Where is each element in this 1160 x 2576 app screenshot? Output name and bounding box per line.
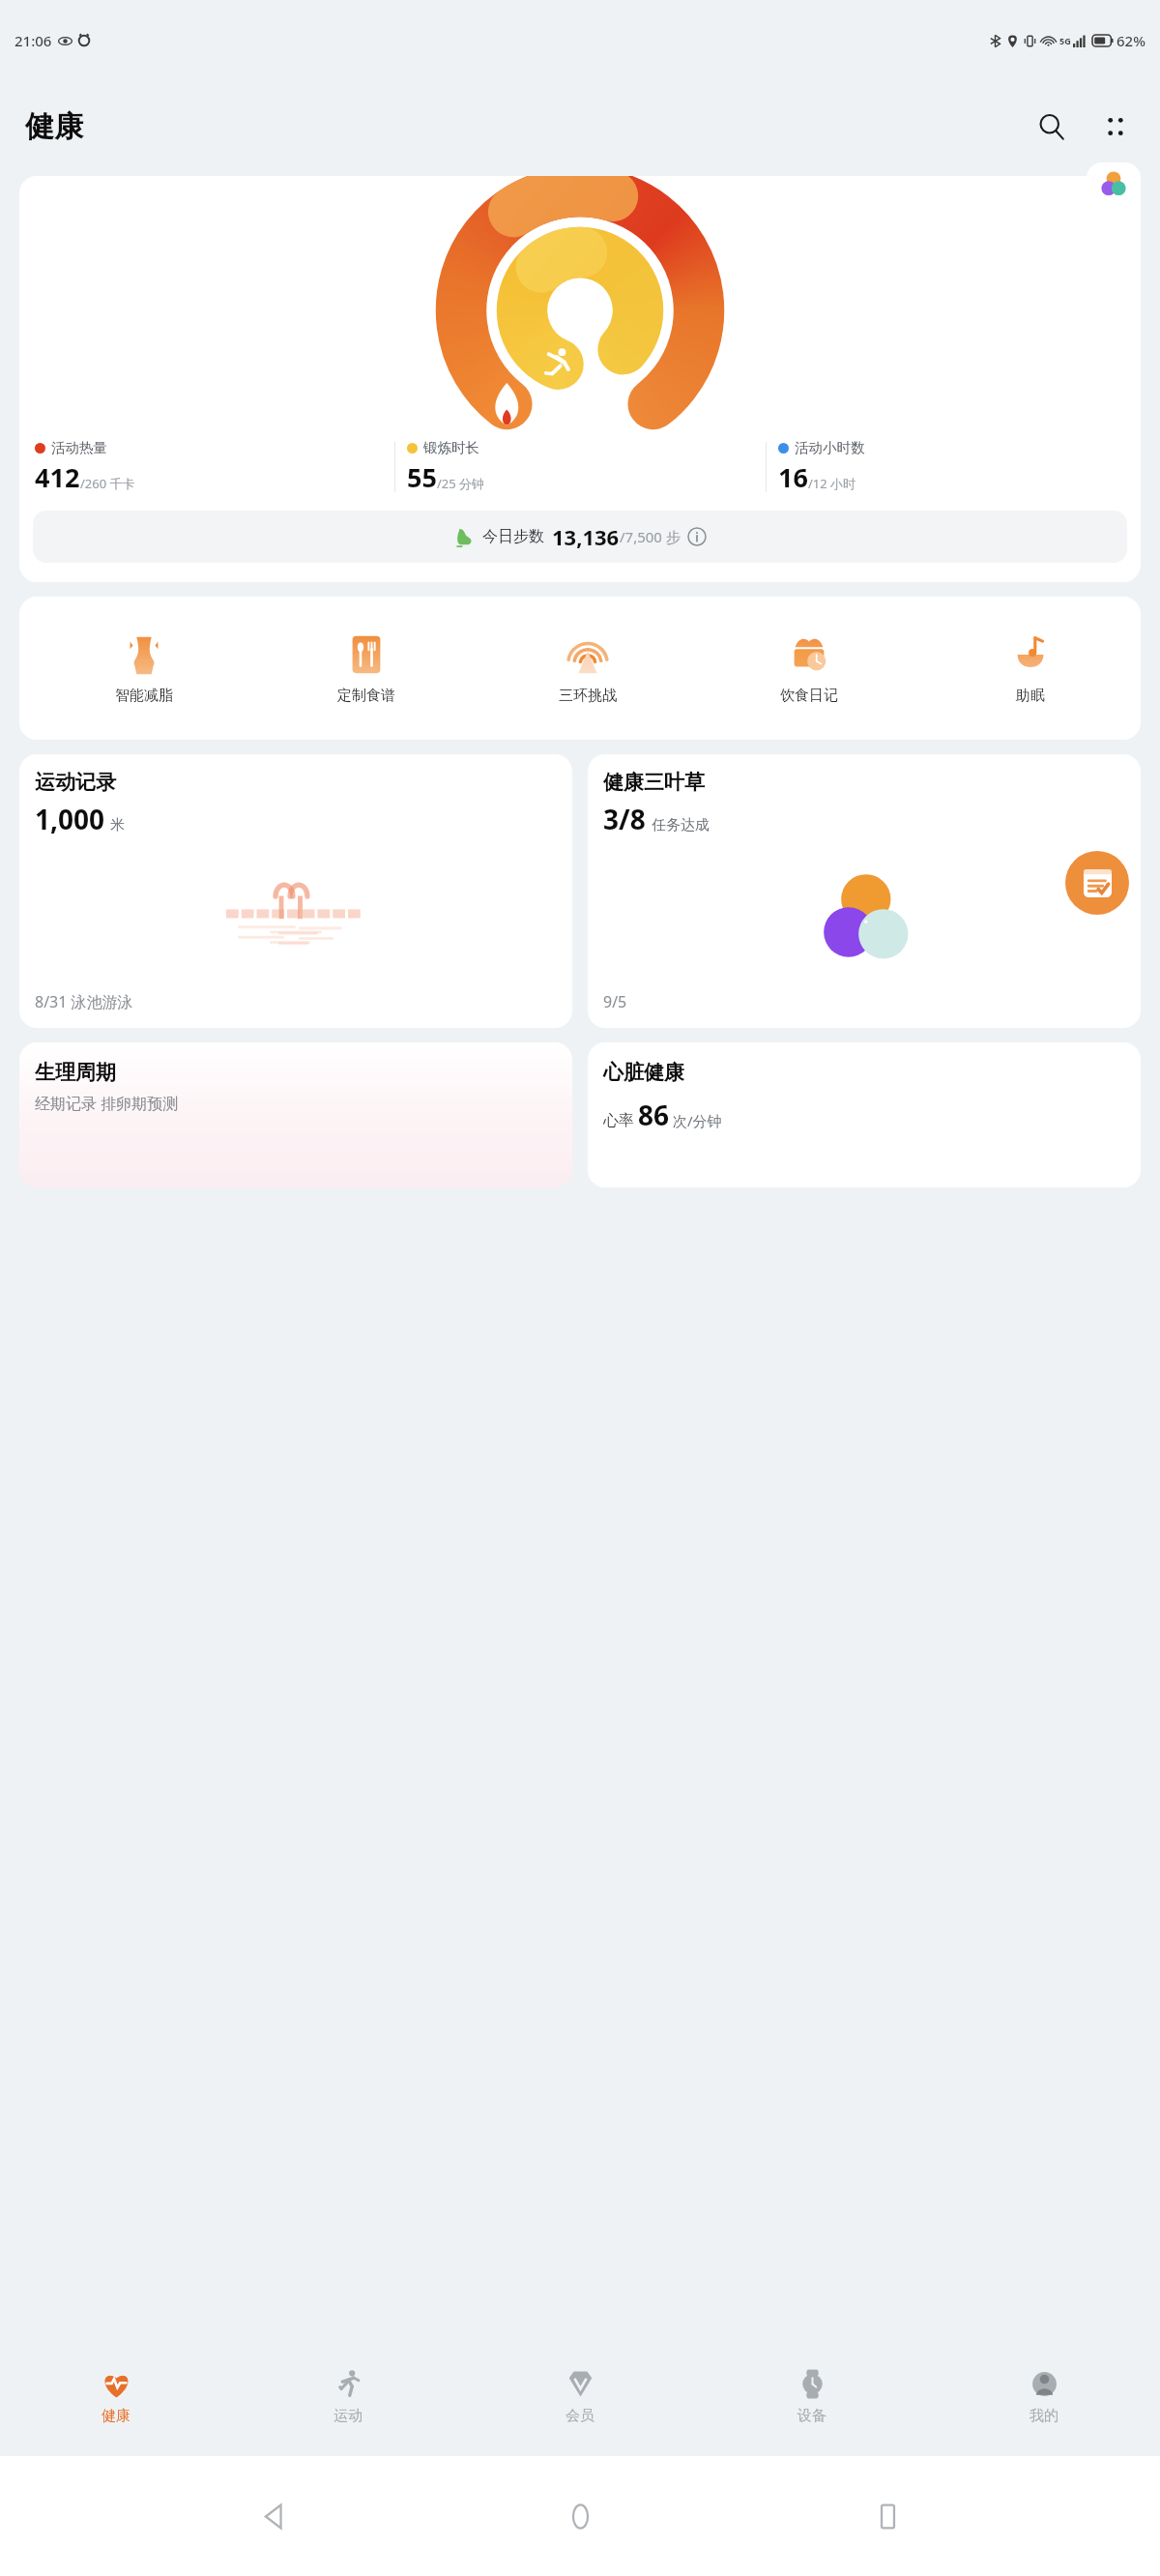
button[interactable]: 心脏健康 [588, 1042, 1141, 1187]
button[interactable]: 活动热量 [23, 439, 394, 495]
staticText: 心率 [603, 1111, 634, 1130]
staticText: 运动记录 [35, 770, 116, 795]
button[interactable]: 健康 [0, 2338, 232, 2456]
button[interactable]: Add health record [1065, 851, 1129, 915]
staticText: 1,000 [35, 801, 105, 837]
button[interactable]: Search [1027, 102, 1077, 152]
staticText: 我的 [1029, 2407, 1058, 2425]
button[interactable]: 我的 [928, 2338, 1160, 2456]
button[interactable]: Recent apps [854, 2482, 921, 2550]
staticText: 米 [110, 816, 125, 834]
button[interactable]: More options [1090, 102, 1141, 152]
button[interactable]: 今日步数 [33, 511, 1127, 563]
button[interactable]: Home [546, 2482, 614, 2550]
button[interactable]: 生理周期 [19, 1042, 572, 1187]
button[interactable]: 健康三叶草 [588, 754, 1141, 1028]
button[interactable]: 定制食谱 [255, 597, 477, 740]
staticText: 21:06 [14, 31, 52, 50]
button[interactable]: 活动热量 [19, 176, 1141, 582]
staticText: 定制食谱 [337, 687, 395, 705]
staticText: /12 小时 [808, 475, 856, 492]
staticText: 任务达成 [652, 816, 710, 834]
button[interactable]: 会员 [464, 2338, 696, 2456]
staticText: 次/分钟 [673, 1111, 722, 1130]
staticText: 健康三叶草 [603, 770, 705, 795]
button[interactable]: 助眠 [919, 597, 1141, 740]
staticText: 助眠 [1016, 687, 1045, 705]
staticText: /25 分钟 [437, 475, 485, 492]
staticText: 13,136 [552, 522, 620, 551]
staticText: 设备 [797, 2407, 826, 2425]
staticText: 心脏健康 [603, 1060, 684, 1085]
button[interactable]: 智能减脂 [33, 597, 255, 740]
button[interactable]: 运动 [232, 2338, 464, 2456]
button[interactable]: Steps info [687, 527, 707, 546]
staticText: 活动热量 [51, 439, 107, 456]
button[interactable]: 活动小时数 [767, 439, 1137, 495]
staticText: 3/8 [603, 801, 646, 837]
staticText: 生理周期 [35, 1060, 116, 1085]
staticText: 饮食日记 [780, 687, 838, 705]
button[interactable]: 饮食日记 [698, 597, 919, 740]
staticText: 三环挑战 [559, 687, 617, 705]
staticText: 86 [638, 1097, 670, 1133]
staticText: 锻炼时长 [423, 439, 479, 456]
staticText: 今日步数 [482, 527, 544, 546]
button[interactable]: 运动记录 [19, 754, 572, 1028]
button[interactable]: 锻炼时长 [395, 439, 766, 495]
staticText: /7,500 步 [620, 527, 681, 546]
staticText: 健康 [25, 108, 83, 145]
staticText: 5G [1059, 35, 1071, 46]
staticText: 会员 [565, 2407, 594, 2425]
button[interactable]: Back [240, 2482, 307, 2550]
button[interactable]: Health clover [1087, 162, 1141, 205]
staticText: 活动小时数 [795, 439, 865, 456]
staticText: 16 [778, 459, 808, 495]
staticText: 62% [1116, 31, 1145, 50]
staticText: /260 千卡 [80, 475, 135, 492]
staticText: 经期记录 排卵期预测 [35, 1093, 179, 1114]
staticText: 智能减脂 [115, 687, 173, 705]
button[interactable]: 三环挑战 [477, 597, 698, 740]
button[interactable]: 设备 [696, 2338, 928, 2456]
staticText: 9/5 [603, 991, 627, 1012]
staticText: 运动 [333, 2407, 362, 2425]
staticText: 55 [407, 459, 437, 495]
staticText: 412 [35, 459, 80, 495]
staticText: 健康 [101, 2407, 130, 2425]
staticText: 8/31 泳池游泳 [35, 991, 133, 1012]
